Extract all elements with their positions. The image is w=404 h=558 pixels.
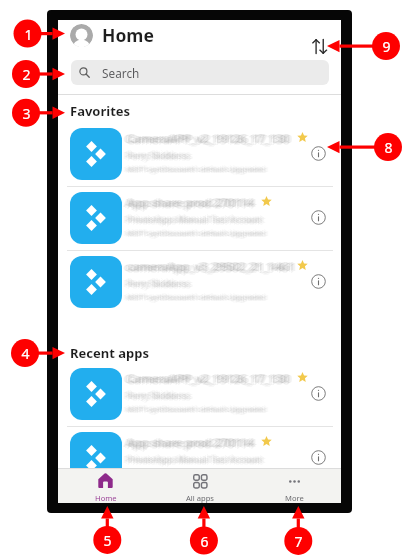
staticText: PrivateApps Manual Test Account [125, 455, 261, 467]
staticText: App share prod 270114 [124, 195, 251, 211]
button[interactable]: Account [70, 24, 93, 47]
button[interactable]: Info [306, 269, 330, 293]
staticText: PrivateApps Manual Test Account [123, 454, 259, 466]
staticText: cameraApp_v3_29502_21_1461 [128, 260, 296, 276]
staticText: PrivateApps Manual Test Account [127, 216, 263, 228]
staticText: More [285, 493, 304, 503]
staticText: App share prod 270114 [127, 437, 254, 453]
staticText: MSFT-synDiscount1-default-Upgraded [125, 467, 264, 478]
staticText: MSFT-synDiscount1-default-Upgraded [128, 403, 267, 414]
staticText: MSFT-synDiscount1-default-Upgraded [123, 228, 262, 239]
staticText: PrivateApps Manual Test Account [127, 212, 263, 224]
staticText: MSFT-synDiscount1-default-Upgraded [124, 468, 263, 479]
staticText: Favorites [70, 102, 131, 120]
staticText: MSFT-synDiscount1-default-Upgraded [127, 405, 266, 416]
staticText: MSFT-synDiscount1-default-Upgraded [125, 227, 264, 238]
button[interactable]: Info [306, 141, 330, 165]
button[interactable]: App share prod 270114 [58, 184, 341, 250]
staticText: MSFT-synDiscount1-default-Upgraded [128, 291, 267, 302]
button[interactable]: CameraAPP_v2_19126_17_130 [58, 120, 341, 186]
staticText: Perry Skidderss [123, 150, 187, 162]
button[interactable]: Info [306, 445, 330, 469]
staticText: MSFT-synDiscount1-default-Upgraded [128, 293, 267, 304]
staticText: PrivateApps Manual Test Account [128, 453, 264, 465]
staticText: PrivateApps Manual Test Account [129, 454, 265, 466]
staticText: App share prod 270114 [127, 194, 254, 210]
staticText: MSFT-synDiscount1-default-Upgraded [129, 404, 268, 415]
staticText: Perry Skidderss [127, 278, 191, 290]
staticText: CameraAPP_v2_19126_17_130 [129, 371, 292, 387]
staticText: Perry Skidderss [130, 390, 194, 402]
staticText: Perry Skidderss [125, 277, 189, 289]
button[interactable]: Info [306, 381, 330, 405]
staticText: Perry Skidderss [128, 391, 192, 403]
staticText: cameraApp_v3_29502_21_1461 [127, 258, 295, 274]
staticText: cameraApp_v3_29502_21_1461 [129, 259, 297, 275]
staticText: Perry Skidderss [125, 279, 189, 291]
staticText: 2 [22, 65, 31, 84]
staticText: MSFT-synDiscount1-default-Upgraded [123, 164, 262, 175]
staticText: MSFT-synDiscount1-default-Upgraded [127, 292, 266, 303]
staticText: MSFT-synDiscount1-default-Upgraded [128, 163, 267, 174]
staticText: CameraAPP_v2_19126_17_130 [125, 132, 288, 148]
staticText: Perry Skidderss [128, 149, 192, 161]
staticText: Perry Skidderss [127, 276, 191, 288]
button[interactable]: CameraAPP_v2_19126_17_130 [58, 360, 341, 426]
staticText: MSFT-synDiscount1-default-Upgraded [128, 467, 267, 478]
staticText: CameraAPP_v2_19126_17_130 [129, 131, 292, 147]
staticText: MSFT-synDiscount1-default-Upgraded [129, 164, 268, 175]
staticText: CameraAPP_v2_19126_17_130 [123, 371, 286, 387]
staticText: CameraAPP_v2_19126_17_130 [128, 132, 291, 148]
staticText: MSFT-synDiscount1-default-Upgraded [127, 466, 266, 477]
staticText: MSFT-synDiscount1-default-Upgraded [125, 293, 264, 304]
staticText: PrivateApps Manual Test Account [130, 454, 266, 466]
button[interactable]: Search [71, 60, 329, 85]
staticText: App share prod 270114 [125, 434, 252, 450]
staticText: MSFT-synDiscount1-default-Upgraded [129, 468, 268, 479]
staticText: 6 [200, 532, 209, 551]
staticText: MSFT-synDiscount1-default-Upgraded [127, 402, 266, 413]
staticText: 5 [103, 531, 112, 550]
staticText: App share prod 270114 [125, 436, 252, 452]
staticText: App share prod 270114 [127, 197, 254, 213]
button[interactable]: More [247, 469, 341, 503]
staticText: Perry Skidderss [128, 389, 192, 401]
staticText: CameraAPP_v2_19126_17_130 [128, 130, 291, 146]
staticText: App share prod 270114 [124, 435, 251, 451]
staticText: CameraAPP_v2_19126_17_130 [130, 131, 293, 147]
staticText: 3 [22, 104, 31, 123]
staticText: MSFT-synDiscount1-default-Upgraded [124, 228, 263, 239]
staticText: MSFT-synDiscount1-default-Upgraded [123, 468, 262, 479]
staticText: PrivateApps Manual Test Account [127, 214, 263, 226]
staticText: MSFT-synDiscount1-default-Upgraded [125, 165, 264, 176]
staticText: App share prod 270114 [123, 435, 250, 451]
staticText: cameraApp_v3_29502_21_1461 [127, 261, 295, 277]
staticText: Perry Skidderss [128, 151, 192, 163]
staticText: Perry Skidderss [129, 150, 193, 162]
staticText: MSFT-synDiscount1-default-Upgraded [130, 404, 269, 415]
staticText: MSFT-synDiscount1-default-Upgraded [127, 293, 266, 304]
staticText: CameraAPP_v2_19126_17_130 [128, 372, 291, 388]
staticText: MSFT-synDiscount1-default-Upgraded [130, 228, 269, 239]
staticText: cameraApp_v3_29502_21_1461 [127, 259, 295, 275]
staticText: Perry Skidderss [128, 277, 192, 289]
staticText: MSFT-synDiscount1-default-Upgraded [123, 292, 262, 303]
button[interactable]: Info [306, 205, 330, 229]
button[interactable]: cameraApp_v3_29502_21_1461 [58, 248, 341, 314]
staticText: PrivateApps Manual Test Account [130, 214, 266, 226]
button[interactable]: App share prod 270114 [58, 424, 341, 490]
staticText: PrivateApps Manual Test Account [125, 215, 261, 227]
staticText: Perry Skidderss [123, 390, 187, 402]
staticText: 4 [21, 344, 30, 363]
button[interactable]: All apps [153, 469, 247, 503]
staticText: CameraAPP_v2_19126_17_130 [125, 130, 288, 146]
button[interactable]: Sort [306, 33, 333, 60]
staticText: CameraAPP_v2_19126_17_130 [127, 131, 290, 147]
staticText: cameraApp_v3_29502_21_1461 [130, 259, 298, 275]
staticText: MSFT-synDiscount1-default-Upgraded [127, 162, 266, 173]
button[interactable]: Home [58, 469, 153, 503]
staticText: Perry Skidderss [125, 151, 189, 163]
staticText: MSFT-synDiscount1-default-Upgraded [127, 228, 266, 239]
staticText: MSFT-synDiscount1-default-Upgraded [127, 290, 266, 301]
staticText: Perry Skidderss [124, 390, 188, 402]
